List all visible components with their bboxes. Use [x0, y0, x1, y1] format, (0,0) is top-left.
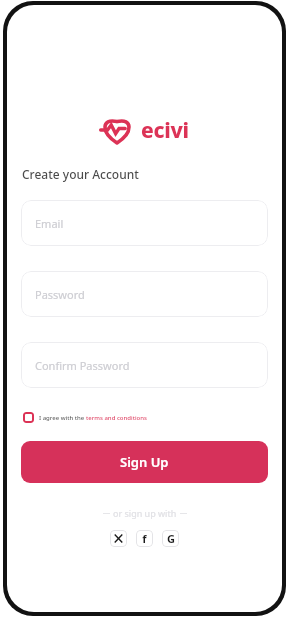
button[interactable]: terms and conditions	[86, 414, 147, 422]
staticText: Create your Account	[22, 166, 139, 182]
button[interactable]: Sign Up	[21, 441, 268, 483]
button[interactable]: I agree with the	[21, 410, 149, 425]
button[interactable]: Confirm Password	[21, 342, 268, 388]
staticText: f	[142, 531, 147, 546]
staticText: Sign Up	[120, 453, 169, 471]
staticText: Email	[35, 216, 64, 231]
button[interactable]: Google sign up	[162, 530, 179, 547]
staticText: I agree with the	[39, 414, 86, 422]
button[interactable]: Email	[21, 200, 268, 246]
staticText: ecivi	[141, 116, 189, 145]
button[interactable]: Facebook sign up	[136, 530, 153, 547]
button[interactable]: Password	[21, 271, 268, 317]
staticText: Confirm Password	[35, 358, 130, 373]
staticText: Password	[35, 287, 85, 302]
button[interactable]: X (Twitter) sign up	[110, 530, 127, 547]
staticText: or sign up with	[113, 507, 177, 519]
staticText: G	[167, 531, 175, 546]
